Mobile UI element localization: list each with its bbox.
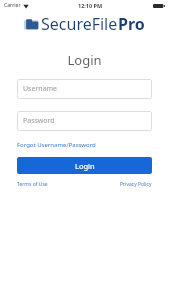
button[interactable]: Username: [17, 79, 152, 99]
staticText: Login: [0, 51, 169, 69]
button[interactable]: Password: [17, 111, 152, 131]
staticText: SecureFile: [41, 13, 118, 35]
staticText: Terms of Use: [17, 181, 48, 188]
staticText: Login: [75, 161, 95, 171]
button[interactable]: Forgot Username/Password: [17, 140, 96, 150]
staticText: Privacy Policy: [120, 181, 152, 188]
staticText: 12:10 PM: [78, 2, 103, 9]
other: SecureFilePro logo: [24, 18, 39, 31]
staticText: Password: [23, 116, 55, 126]
staticText: Forgot Username/Password: [17, 141, 96, 149]
staticText: Carrier: [4, 2, 21, 9]
staticText: Pro: [118, 13, 145, 35]
button[interactable]: Privacy Policy: [120, 181, 152, 188]
button[interactable]: Terms of Use: [17, 181, 48, 188]
staticText: Username: [23, 84, 58, 94]
button[interactable]: Login: [17, 157, 152, 174]
